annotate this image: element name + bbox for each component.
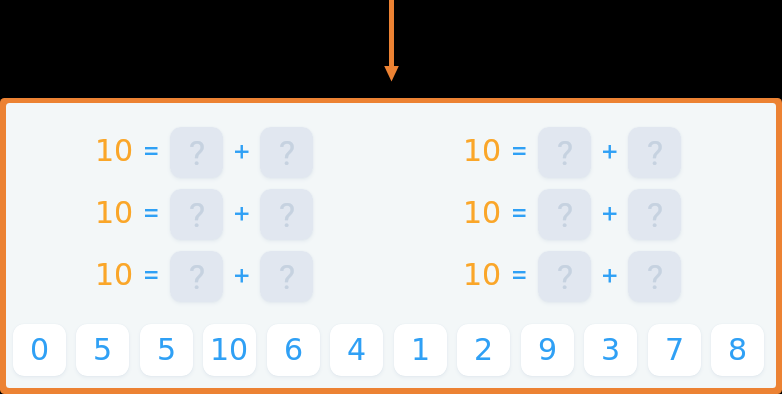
staticText: 6 <box>284 332 304 367</box>
staticText: ? <box>557 257 574 297</box>
staticText: 3 <box>601 332 621 367</box>
other: equals <box>145 271 160 286</box>
staticText: 10 <box>210 332 249 367</box>
staticText: 10 <box>463 195 502 230</box>
other: equals <box>513 209 528 224</box>
other: equals <box>145 147 160 162</box>
staticText: 2 <box>474 332 494 367</box>
button[interactable]: 0 <box>13 324 66 376</box>
staticText: 10 <box>463 257 502 292</box>
button[interactable]: 1 <box>394 324 447 376</box>
staticText: ? <box>189 257 206 297</box>
staticText: 10 <box>95 195 134 230</box>
button[interactable]: Empty answer slot <box>628 127 681 178</box>
staticText: 1 <box>411 332 431 367</box>
button[interactable]: Empty answer slot <box>538 189 591 240</box>
staticText: ? <box>557 195 574 235</box>
other: plus <box>235 269 251 285</box>
staticText: 5 <box>157 332 177 367</box>
staticText: 10 <box>95 257 134 292</box>
button[interactable]: 2 <box>457 324 510 376</box>
staticText: 4 <box>347 332 367 367</box>
staticText: ? <box>647 257 664 297</box>
staticText: 9 <box>538 332 558 367</box>
staticText: 10 <box>463 133 502 168</box>
button[interactable]: Empty answer slot <box>260 127 313 178</box>
button[interactable]: Empty answer slot <box>538 127 591 178</box>
staticText: ? <box>189 195 206 235</box>
staticText: 0 <box>30 332 50 367</box>
staticText: 8 <box>728 332 748 367</box>
other: Hint arrow <box>0 0 782 394</box>
other: plus <box>235 145 251 161</box>
button[interactable]: Empty answer slot <box>538 251 591 302</box>
other: equals <box>145 209 160 224</box>
button[interactable]: Empty answer slot <box>170 127 223 178</box>
other: plus <box>603 145 619 161</box>
other: equals <box>513 147 528 162</box>
button[interactable]: Empty answer slot <box>170 251 223 302</box>
staticText: ? <box>189 133 206 173</box>
other: plus <box>603 207 619 223</box>
button[interactable]: 8 <box>711 324 764 376</box>
button[interactable]: 5 <box>76 324 129 376</box>
button[interactable]: 5 <box>140 324 193 376</box>
staticText: ? <box>279 133 296 173</box>
button[interactable]: 6 <box>267 324 320 376</box>
staticText: ? <box>279 195 296 235</box>
button[interactable]: Empty answer slot <box>628 251 681 302</box>
button[interactable]: Empty answer slot <box>260 251 313 302</box>
button[interactable]: 7 <box>648 324 701 376</box>
button[interactable]: Empty answer slot <box>170 189 223 240</box>
staticText: 7 <box>665 332 685 367</box>
other: plus <box>235 207 251 223</box>
button[interactable]: 10 <box>203 324 256 376</box>
staticText: ? <box>647 133 664 173</box>
other: equals <box>513 271 528 286</box>
staticText: 5 <box>93 332 113 367</box>
staticText: ? <box>647 195 664 235</box>
staticText: ? <box>279 257 296 297</box>
other: plus <box>603 269 619 285</box>
staticText: ? <box>557 133 574 173</box>
button[interactable]: 4 <box>330 324 383 376</box>
button[interactable]: 3 <box>584 324 637 376</box>
staticText: 10 <box>95 133 134 168</box>
button[interactable]: 9 <box>521 324 574 376</box>
button[interactable]: Empty answer slot <box>628 189 681 240</box>
button[interactable]: Empty answer slot <box>260 189 313 240</box>
